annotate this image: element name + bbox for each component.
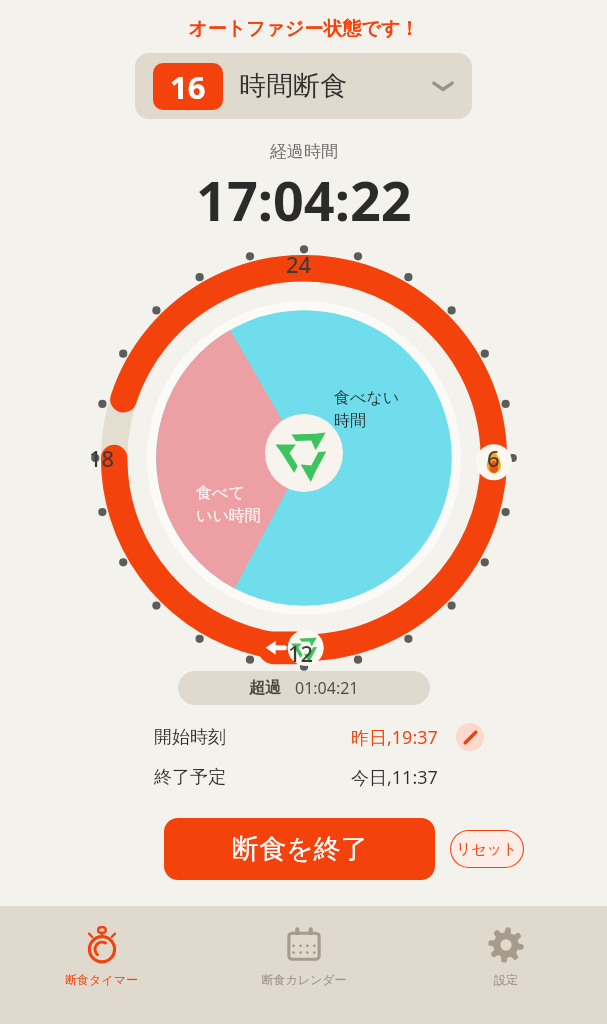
button[interactable]: 設定 <box>405 906 607 1024</box>
staticText: 01:04:21 <box>295 677 359 699</box>
staticText: オートファジー状態です！ <box>188 17 420 41</box>
staticText: 6 <box>487 443 500 473</box>
staticText: 断食タイマー <box>65 972 138 987</box>
staticText: 12 <box>288 638 314 668</box>
staticText: 食べて いい時間 <box>196 483 261 526</box>
staticText: 食べない 時間 <box>334 388 400 431</box>
button[interactable]: 開始時刻を編集 <box>456 723 484 751</box>
staticText: 超過 <box>249 678 281 698</box>
staticText: 時間断食 <box>239 69 347 103</box>
button[interactable]: 断食カレンダー <box>203 906 405 1024</box>
button[interactable]: 断食を終了 <box>164 818 435 880</box>
button[interactable]: 16 <box>135 53 472 119</box>
button[interactable]: 断食タイマー <box>0 906 203 1024</box>
staticText: 設定 <box>494 972 518 987</box>
button[interactable]: リセット <box>450 830 524 868</box>
staticText: 16 <box>170 66 206 108</box>
staticText: 17:04:22 <box>196 163 412 237</box>
staticText: 24 <box>286 249 312 279</box>
staticText: 昨日,19:37 <box>351 725 438 750</box>
staticText: 開始時刻 <box>154 726 226 749</box>
staticText: 断食を終了 <box>232 832 368 866</box>
staticText: リセット <box>456 840 518 859</box>
staticText: 今日,11:37 <box>351 765 438 790</box>
staticText: 18 <box>89 443 115 473</box>
staticText: 終了予定 <box>154 766 226 789</box>
staticText: 断食カレンダー <box>261 972 347 987</box>
staticText: 経過時間 <box>270 141 338 162</box>
